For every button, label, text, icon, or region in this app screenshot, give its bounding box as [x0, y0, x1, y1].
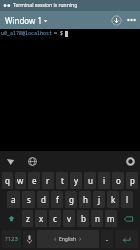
button[interactable]: u0_a170@localhost [0, 29, 140, 151]
button[interactable]: z [22, 210, 33, 227]
button[interactable]: w [15, 172, 26, 189]
button[interactable]: Shift [2, 210, 20, 227]
staticText: x [39, 213, 44, 224]
button[interactable]: o [112, 172, 124, 189]
staticText: Window 1 [5, 15, 42, 26]
button[interactable]: v [63, 210, 75, 227]
button[interactable]: i [98, 172, 110, 189]
staticText: p [130, 175, 135, 186]
staticText: r [46, 175, 50, 186]
staticText: e [32, 175, 37, 186]
staticText: ‹ [54, 234, 57, 244]
button[interactable]: Hide keyboard [109, 13, 124, 28]
button[interactable]: e [28, 172, 40, 189]
button[interactable]: k [107, 191, 119, 208]
button[interactable]: j [93, 191, 105, 208]
button[interactable]: Settings [123, 154, 137, 168]
staticText: o [116, 175, 121, 186]
button[interactable]: f [51, 191, 63, 208]
button[interactable]: Voice input [23, 230, 35, 248]
button[interactable]: u [84, 172, 96, 189]
button[interactable]: g [65, 191, 77, 208]
staticText: English [59, 236, 77, 243]
staticText: m [107, 213, 115, 224]
button[interactable]: ‹ [37, 230, 99, 248]
button[interactable]: t [56, 172, 68, 189]
button[interactable]: d [37, 191, 49, 208]
staticText: h [83, 194, 88, 205]
button[interactable]: Window 1 [4, 12, 49, 29]
staticText: z [26, 213, 30, 224]
button[interactable]: b [77, 210, 89, 227]
staticText: k [111, 194, 116, 205]
staticText: . [106, 234, 108, 244]
staticText: u0_a170@localhost [1, 30, 53, 37]
button[interactable]: c [49, 210, 61, 227]
staticText: w [17, 175, 24, 186]
staticText: n [95, 213, 100, 224]
button[interactable]: r [42, 172, 54, 189]
staticText: ?123 [5, 235, 18, 243]
staticText: u [88, 175, 93, 186]
staticText: Terminal session is running [13, 2, 78, 9]
staticText: v [67, 213, 72, 224]
staticText: j [98, 194, 101, 205]
staticText: b [81, 213, 86, 224]
staticText: s [27, 194, 31, 205]
staticText: › [79, 234, 82, 244]
staticText: g [69, 194, 74, 205]
button[interactable]: l [121, 191, 133, 208]
button[interactable]: a [7, 191, 20, 208]
staticText: l [126, 194, 129, 205]
button[interactable]: . [101, 230, 113, 248]
staticText: q [5, 175, 10, 186]
staticText: d [41, 194, 46, 205]
staticText: t [61, 175, 64, 186]
button[interactable]: s [22, 191, 35, 208]
staticText: c [53, 213, 57, 224]
button[interactable]: n [91, 210, 103, 227]
button[interactable]: x [35, 210, 47, 227]
button[interactable]: ?123 [2, 230, 21, 248]
button[interactable]: p [126, 172, 138, 189]
staticText: f [56, 194, 59, 205]
button[interactable]: h [79, 191, 91, 208]
staticText: ~ $ [54, 30, 64, 37]
button[interactable]: q [2, 172, 13, 189]
button[interactable]: Switch language [25, 154, 39, 168]
staticText: i [103, 175, 106, 186]
button[interactable]: Backspace [119, 210, 138, 227]
button[interactable]: y [70, 172, 82, 189]
staticText: y [74, 175, 79, 186]
button[interactable]: Clipboard [3, 154, 17, 168]
button[interactable]: m [105, 210, 117, 227]
button[interactable]: More options [124, 12, 138, 28]
button[interactable]: Enter [115, 230, 138, 248]
staticText: a [11, 194, 16, 205]
